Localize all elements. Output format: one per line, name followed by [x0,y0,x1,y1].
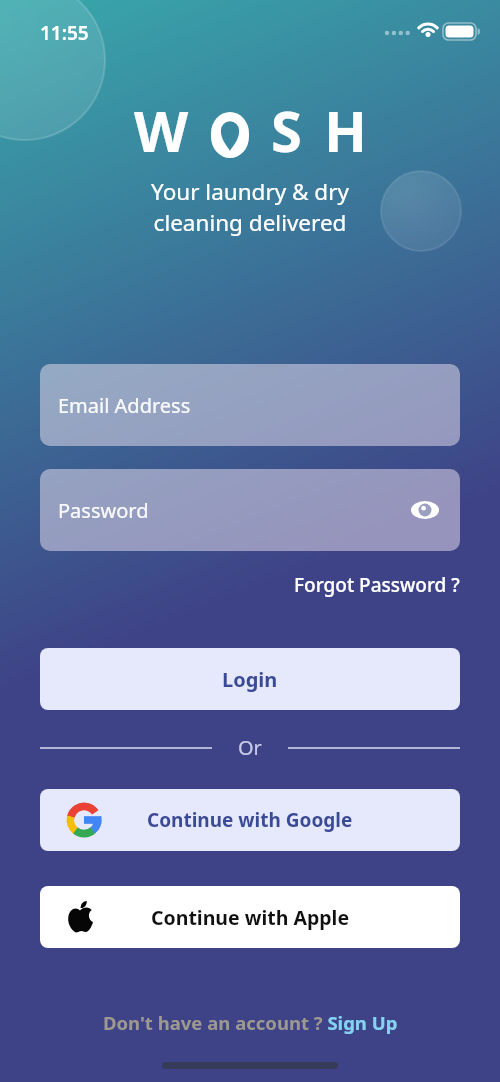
button[interactable]: Password [40,469,460,551]
staticText: S [271,92,302,168]
button[interactable]: Forgot Password ? [294,572,460,598]
staticText: Password [58,497,149,524]
button[interactable]: Don't have an account ? Sign Up [103,1010,398,1035]
button[interactable]: Continue with Apple [40,886,460,948]
staticText: W [134,92,189,168]
button[interactable]: Login [40,648,460,710]
staticText: H [324,92,367,168]
staticText: Continue with Apple [151,904,350,931]
staticText: Login [222,666,278,693]
staticText: Or [238,734,262,761]
staticText: Continue with Google [147,807,353,833]
staticText: Your laundry & dry cleaning delivered [0,176,500,238]
staticText: 11:55 [40,20,89,46]
button[interactable]: Email Address [40,364,460,446]
staticText: Email Address [58,392,191,419]
button[interactable]: Continue with Google [40,789,460,851]
